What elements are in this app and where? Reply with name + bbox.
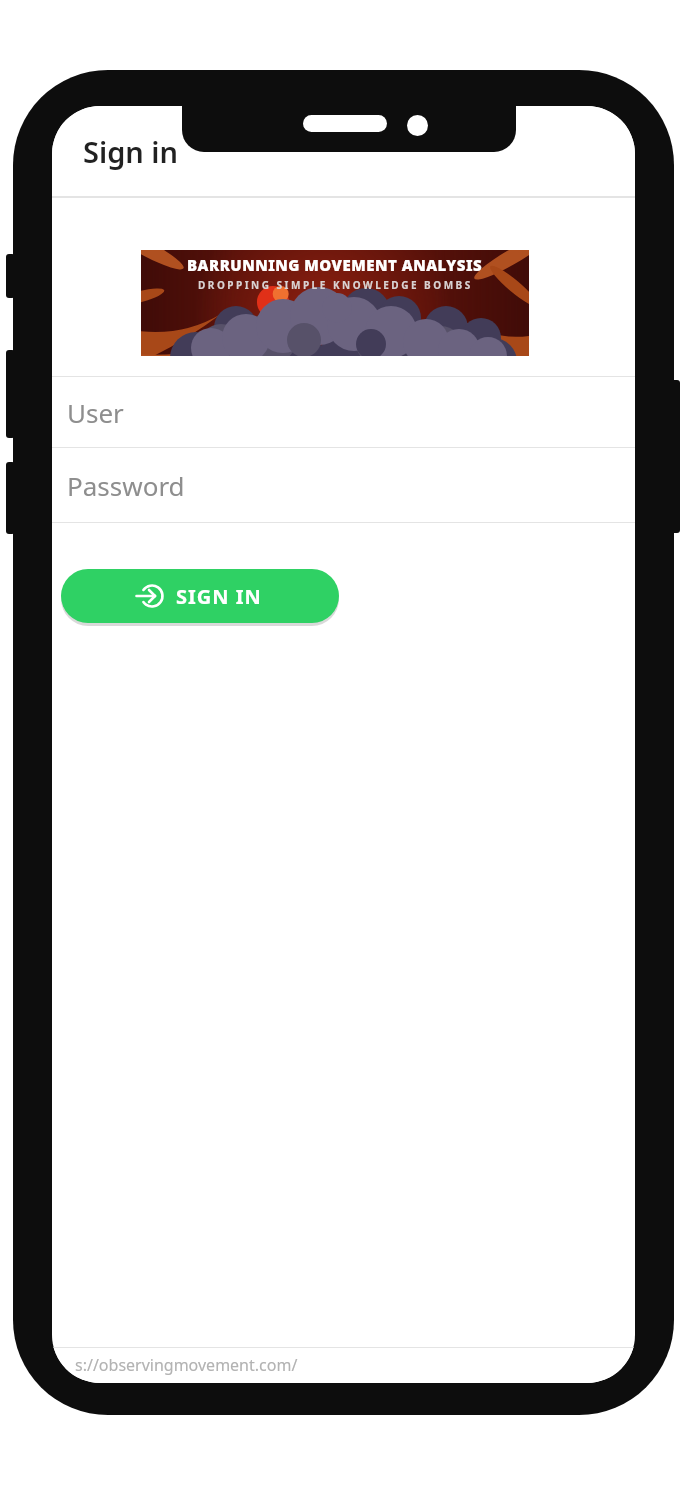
button[interactable]: Password	[52, 448, 635, 522]
staticText: DROPPING SIMPLE KNOWLEDGE BOMBS	[198, 278, 473, 292]
staticText: SIGN IN	[176, 583, 262, 610]
staticText: s://observingmovement.com/	[75, 1354, 298, 1376]
staticText: BARRUNNING MOVEMENT ANALYSIS	[187, 255, 483, 275]
staticText: Password	[67, 468, 185, 503]
staticText: Sign in	[83, 132, 179, 171]
staticText: User	[67, 395, 124, 430]
button[interactable]: SIGN IN	[61, 569, 339, 623]
button[interactable]: User	[52, 377, 635, 447]
